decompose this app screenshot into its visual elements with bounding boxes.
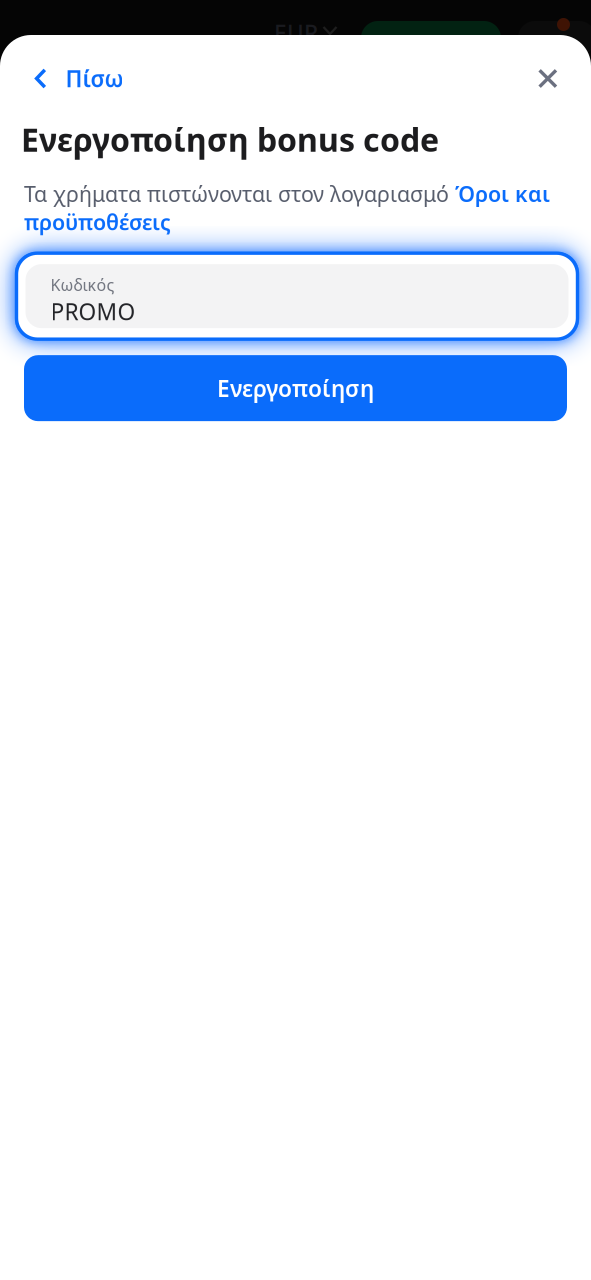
staticText: Τα χρήματα πιστώνονται στον λογαριασμό Ό… — [24, 179, 550, 236]
staticText: Ενεργοποίηση bonus code — [21, 118, 439, 160]
button[interactable]: Close — [520, 56, 591, 101]
staticText: Πίσω — [65, 63, 123, 93]
button[interactable]: Πίσω — [0, 52, 137, 104]
staticText: EUR — [274, 18, 318, 48]
staticText: PROMO — [50, 296, 135, 326]
staticText: Ενεργοποίηση — [217, 373, 374, 403]
button[interactable]: Ενεργοποίηση — [24, 355, 567, 421]
staticText: Κωδικός — [50, 274, 114, 295]
button[interactable]: Τα χρήματα πιστώνονται στον λογαριασμό Ό… — [0, 179, 557, 236]
